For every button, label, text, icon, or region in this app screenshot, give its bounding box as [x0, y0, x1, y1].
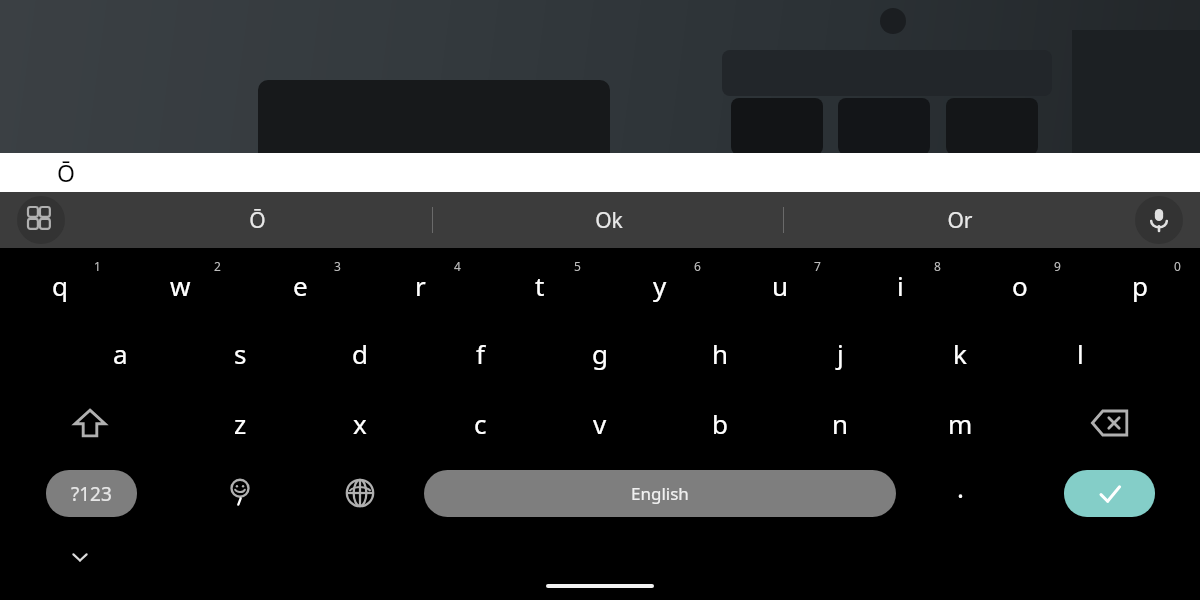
staticText: y [653, 268, 667, 303]
button[interactable]: j [780, 318, 900, 388]
staticText: 6 [694, 258, 701, 274]
button[interactable]: q [0, 248, 120, 318]
staticText: a [113, 336, 128, 371]
button[interactable]: Voice input [1135, 196, 1183, 244]
staticText: b [712, 406, 728, 441]
staticText: Ok [595, 206, 623, 235]
staticText: s [234, 336, 247, 371]
button[interactable]: Enter [1064, 470, 1155, 517]
button[interactable]: Emoji [180, 458, 300, 528]
button[interactable]: Ok [433, 192, 784, 248]
button[interactable]: o [960, 248, 1080, 318]
staticText: j [837, 336, 844, 371]
button[interactable]: k [900, 318, 1020, 388]
staticText: v [593, 406, 607, 441]
button[interactable]: r [360, 248, 480, 318]
button[interactable]: Shift [30, 388, 150, 458]
staticText: Ō [249, 206, 266, 235]
staticText: q [52, 268, 68, 303]
staticText: i [897, 268, 904, 303]
staticText: k [953, 336, 967, 371]
button[interactable]: m [900, 388, 1020, 458]
staticText: f [476, 336, 485, 371]
button[interactable]: z [180, 388, 300, 458]
button[interactable]: ?123 [46, 470, 137, 517]
staticText: 8 [934, 258, 941, 274]
button[interactable]: t [480, 248, 600, 318]
button[interactable]: c [420, 388, 540, 458]
staticText: 5 [574, 258, 581, 274]
staticText: u [772, 268, 789, 303]
button[interactable]: n [780, 388, 900, 458]
staticText: 4 [454, 258, 461, 274]
staticText: l [1077, 336, 1084, 371]
button[interactable]: Hide keyboard [40, 534, 120, 580]
button[interactable]: Ō [0, 153, 1200, 192]
button[interactable]: Ō [82, 192, 433, 248]
staticText: o [1012, 268, 1028, 303]
button[interactable]: . [900, 458, 1020, 528]
button[interactable]: w [120, 248, 240, 318]
button[interactable]: Toolbox [17, 196, 65, 244]
staticText: z [234, 406, 247, 441]
button[interactable]: p [1080, 248, 1200, 318]
button[interactable]: Or [784, 192, 1135, 248]
staticText: 0 [1174, 258, 1181, 274]
staticText: p [1132, 268, 1148, 303]
staticText: d [352, 336, 368, 371]
button[interactable]: x [300, 388, 420, 458]
staticText: 3 [334, 258, 341, 274]
button[interactable]: y [600, 248, 720, 318]
staticText: w [170, 268, 191, 303]
staticText: g [592, 336, 608, 371]
staticText: t [535, 268, 545, 303]
button[interactable]: b [660, 388, 780, 458]
staticText: m [948, 406, 973, 441]
staticText: Or [947, 206, 973, 235]
staticText: ?123 [71, 481, 112, 507]
button[interactable]: a [60, 318, 180, 388]
staticText: . [957, 470, 964, 505]
staticText: e [293, 268, 308, 303]
button[interactable]: d [300, 318, 420, 388]
button[interactable]: Backspace [1050, 388, 1170, 458]
button[interactable]: English [424, 470, 896, 517]
button[interactable]: e [240, 248, 360, 318]
staticText: 7 [814, 258, 821, 274]
staticText: n [832, 406, 849, 441]
button[interactable]: i [840, 248, 960, 318]
staticText: Ō [57, 157, 75, 188]
staticText: x [353, 406, 367, 441]
button[interactable]: v [540, 388, 660, 458]
staticText: r [415, 268, 426, 303]
button[interactable]: s [180, 318, 300, 388]
button[interactable]: l [1020, 318, 1140, 388]
staticText: c [474, 406, 487, 441]
staticText: English [631, 482, 689, 505]
button[interactable]: u [720, 248, 840, 318]
button[interactable]: h [660, 318, 780, 388]
button[interactable]: g [540, 318, 660, 388]
staticText: 2 [214, 258, 221, 274]
button[interactable]: Change language [300, 458, 420, 528]
staticText: 9 [1054, 258, 1061, 274]
staticText: h [712, 336, 729, 371]
button[interactable]: f [420, 318, 540, 388]
staticText: 1 [94, 258, 101, 274]
